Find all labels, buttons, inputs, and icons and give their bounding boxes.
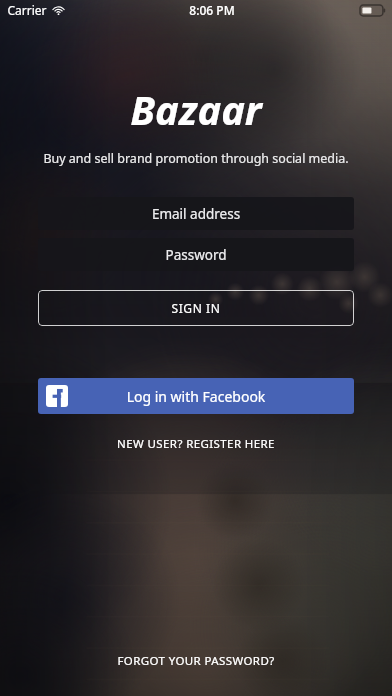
button[interactable]: SIGN IN xyxy=(38,290,354,326)
staticText: Email address xyxy=(38,205,354,223)
staticText: NEW USER? REGISTER HERE xyxy=(60,436,332,452)
staticText: Log in with Facebook xyxy=(68,387,324,406)
button[interactable]: NEW USER? REGISTER HERE xyxy=(60,432,332,456)
staticText: Bazaar xyxy=(0,82,392,136)
button[interactable]: Log in with Facebook xyxy=(38,378,354,414)
staticText: 8:06 PM xyxy=(189,2,235,18)
staticText: Buy and sell brand promotion through soc… xyxy=(0,150,392,167)
staticText: Password xyxy=(38,246,354,264)
button[interactable]: Password xyxy=(38,238,354,271)
staticText: FORGOT YOUR PASSWORD? xyxy=(60,653,332,669)
staticText: SIGN IN xyxy=(38,300,354,316)
button[interactable]: Email address xyxy=(38,197,354,230)
staticText: Carrier xyxy=(7,2,47,18)
button[interactable]: FORGOT YOUR PASSWORD? xyxy=(60,648,332,674)
